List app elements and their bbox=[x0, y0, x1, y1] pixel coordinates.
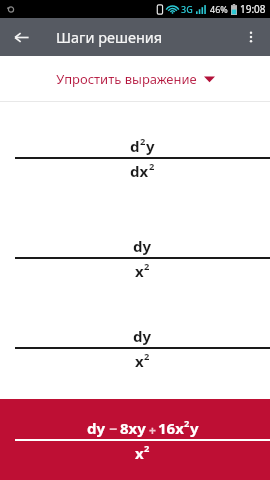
staticText: 2 bbox=[144, 442, 150, 455]
staticText: x bbox=[135, 443, 144, 463]
staticText: 3G bbox=[181, 3, 193, 15]
staticText: x bbox=[135, 351, 144, 371]
button[interactable]: Упростить выражение bbox=[0, 56, 270, 101]
staticText: dx bbox=[130, 161, 149, 181]
staticText: 2 bbox=[149, 160, 155, 173]
staticText: 46% bbox=[210, 3, 228, 15]
staticText: dy bbox=[87, 418, 106, 438]
staticText: − bbox=[109, 419, 118, 438]
button[interactable]: dy bbox=[0, 399, 270, 480]
staticText: + bbox=[149, 422, 156, 438]
staticText: dy bbox=[133, 326, 152, 346]
staticText: y bbox=[190, 418, 199, 438]
staticText: 8xy bbox=[120, 418, 146, 438]
staticText: x bbox=[135, 261, 144, 281]
staticText: 2 bbox=[184, 417, 190, 430]
staticText: Шаги решения bbox=[56, 27, 163, 47]
staticText: 2 bbox=[144, 350, 150, 363]
staticText: y bbox=[146, 136, 155, 156]
button[interactable]: Дополнительно bbox=[234, 20, 268, 54]
staticText: d bbox=[130, 136, 140, 156]
staticText: 19:08 bbox=[240, 2, 266, 16]
button[interactable]: Назад bbox=[4, 20, 38, 54]
staticText: dy bbox=[133, 236, 152, 256]
staticText: 2 bbox=[144, 260, 150, 273]
staticText: 2 bbox=[140, 135, 146, 148]
staticText: 16x bbox=[158, 418, 184, 438]
staticText: Упростить выражение bbox=[56, 70, 197, 88]
